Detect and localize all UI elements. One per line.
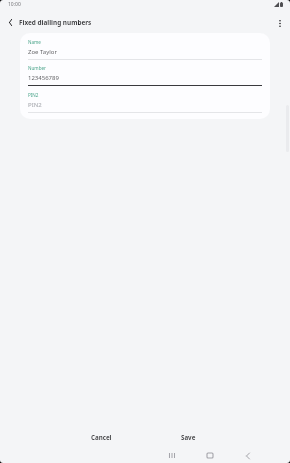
staticText: Number [28, 65, 46, 71]
button[interactable]: Number [20, 59, 270, 86]
staticText: Save [181, 433, 196, 441]
button[interactable]: Home [198, 447, 221, 463]
staticText: Fixed dialling numbers [19, 18, 92, 27]
staticText: Zoe Taylor [28, 48, 57, 56]
staticText: Name [28, 39, 41, 45]
button[interactable]: Save [145, 428, 232, 446]
staticText: Cancel [91, 433, 112, 441]
button[interactable]: PIN2 [20, 86, 270, 113]
staticText: 10:00 [8, 1, 21, 8]
button[interactable]: Recent apps [160, 447, 183, 463]
staticText: PIN2 [28, 101, 42, 109]
button[interactable]: Name [20, 33, 270, 60]
staticText: 123456789 [28, 74, 59, 82]
button[interactable]: Cancel [58, 428, 145, 446]
button[interactable]: Back [236, 447, 259, 463]
button[interactable]: More options [271, 15, 288, 32]
staticText: PIN2 [28, 92, 39, 98]
button[interactable]: Navigate up [2, 14, 19, 31]
